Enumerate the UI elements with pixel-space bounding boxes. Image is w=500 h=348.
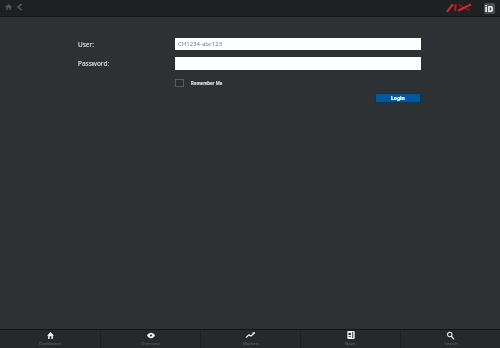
staticText: Login — [391, 95, 405, 102]
button[interactable]: Search — [401, 330, 500, 348]
button[interactable]: Login — [376, 94, 420, 102]
button[interactable]: Dashboard — [0, 330, 100, 348]
button[interactable]: CH1234-abc123 — [175, 38, 421, 50]
button[interactable]: Back — [13, 0, 25, 14]
staticText: Markets — [243, 341, 259, 347]
button[interactable]: News — [301, 330, 400, 348]
staticText: User: — [78, 40, 94, 49]
staticText: Remember Me — [191, 80, 223, 86]
button[interactable]: Remember Me — [175, 78, 223, 88]
staticText: iD — [485, 3, 494, 14]
button[interactable]: Overview — [101, 330, 200, 348]
staticText: News — [345, 341, 356, 347]
staticText: CH1234-abc123 — [178, 40, 223, 48]
button[interactable]: Markets — [201, 330, 300, 348]
staticText: Password: — [78, 59, 110, 68]
button[interactable]: Home — [0, 0, 16, 14]
button[interactable]: iD — [484, 3, 495, 14]
staticText: Dashboard — [39, 341, 61, 347]
staticText: Overview — [141, 341, 160, 347]
staticText: Search — [444, 341, 458, 347]
